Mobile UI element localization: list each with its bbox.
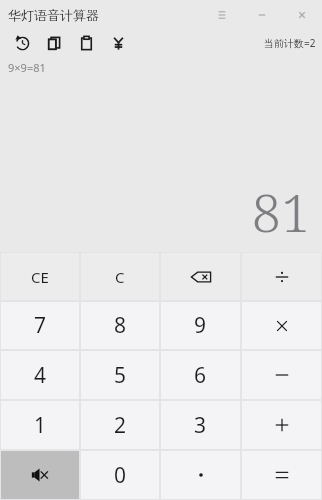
staticText: CE — [31, 267, 49, 287]
button[interactable]: Decimal point — [161, 451, 240, 499]
button[interactable]: C — [81, 253, 159, 300]
button[interactable]: 9 — [161, 302, 240, 349]
button[interactable]: History — [6, 30, 38, 56]
button[interactable]: 4 — [1, 351, 79, 399]
staticText: 1 — [34, 411, 47, 440]
staticText: 2 — [114, 411, 127, 440]
button[interactable]: Mute voice — [1, 451, 79, 499]
staticText: 0 — [114, 461, 127, 490]
button[interactable]: 3 — [161, 401, 240, 449]
staticText: C — [115, 267, 125, 287]
button[interactable]: 6 — [161, 351, 240, 399]
button[interactable]: Plus — [242, 401, 321, 449]
button[interactable]: CE — [1, 253, 79, 300]
staticText: 6 — [194, 361, 207, 390]
button[interactable]: Minus — [242, 351, 321, 399]
staticText: 华灯语音计算器 — [8, 7, 99, 23]
button[interactable]: 1 — [1, 401, 79, 449]
button[interactable]: 5 — [81, 351, 159, 399]
button[interactable]: Menu — [202, 1, 242, 29]
button[interactable]: Divide — [242, 253, 321, 300]
button[interactable]: Equals — [242, 451, 321, 499]
button[interactable]: Paste — [70, 30, 102, 56]
button[interactable]: Close — [282, 1, 322, 29]
button[interactable]: 0 — [81, 451, 159, 499]
button[interactable]: Minimize — [242, 1, 282, 29]
button[interactable]: 7 — [1, 302, 79, 349]
button[interactable]: Backspace — [161, 253, 240, 300]
staticText: 9 — [194, 311, 207, 340]
staticText: 5 — [114, 361, 127, 390]
button[interactable]: 2 — [81, 401, 159, 449]
button[interactable]: Copy — [38, 30, 70, 56]
staticText: 7 — [34, 311, 47, 340]
staticText: 8 — [114, 311, 127, 340]
staticText: 当前计数=2 — [264, 36, 316, 50]
button[interactable]: Multiply — [242, 302, 321, 349]
staticText: 3 — [194, 411, 207, 440]
staticText: 9×9=81 — [8, 60, 46, 75]
staticText: 4 — [34, 361, 47, 390]
button[interactable]: 8 — [81, 302, 159, 349]
staticText: 81 — [251, 176, 310, 238]
button[interactable]: Currency — [102, 30, 134, 56]
